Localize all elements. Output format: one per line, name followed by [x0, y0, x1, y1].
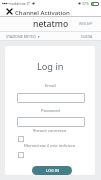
button[interactable]: LOG IN — [32, 166, 72, 175]
button[interactable] — [17, 93, 85, 103]
staticText: Channel Activation — [15, 8, 70, 16]
staticText: Rimani connesso — [33, 128, 67, 134]
staticText: netatmo — [33, 18, 69, 30]
staticText: Password — [41, 108, 60, 114]
staticText: Log in — [37, 60, 64, 73]
button[interactable]: Checkbox — [18, 152, 24, 158]
staticText: 37% — [82, 1, 90, 6]
button[interactable]: Rimani connesso — [5, 128, 95, 134]
button[interactable]: Memorizza il mio indirizzo — [24, 143, 76, 149]
staticText: GUIDA — [81, 34, 93, 39]
staticText: STAZIONE METEO ▾ — [6, 34, 40, 39]
staticText: Memorizza il mio indirizzo — [24, 143, 76, 149]
staticText: Email — [45, 83, 56, 89]
button[interactable]: Checkbox — [18, 136, 24, 142]
staticText: vodafone IT — [10, 1, 31, 6]
staticText: LOG IN — [46, 168, 59, 173]
staticText: WEB APP — [79, 22, 93, 26]
button[interactable] — [17, 117, 85, 127]
button[interactable]: Close — [6, 8, 13, 15]
